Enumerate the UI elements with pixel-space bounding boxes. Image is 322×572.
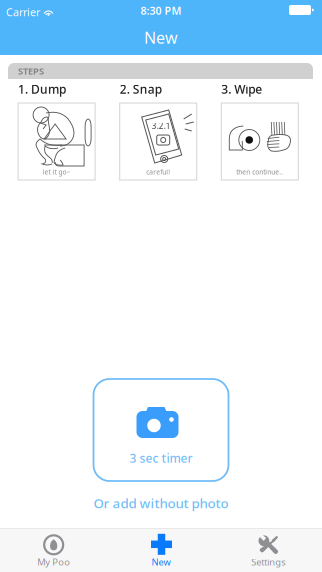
staticText: New [151, 556, 170, 568]
staticText: 8:30 PM [140, 3, 181, 18]
staticText: careful! [146, 168, 170, 176]
staticText: Or add without photo [93, 494, 228, 512]
staticText: 3 sec timer [129, 450, 192, 466]
staticText: 3. Wipe [221, 81, 262, 97]
staticText: 3.2.1 [152, 121, 171, 131]
button[interactable]: New [107, 528, 215, 572]
button[interactable]: 3 sec timer [93, 379, 228, 481]
staticText: 2. Snap [120, 81, 162, 97]
button[interactable]: Or add without photo [51, 493, 271, 513]
staticText: then continue.. [236, 168, 283, 176]
staticText: New [144, 27, 178, 48]
button[interactable]: My Poo [0, 528, 107, 572]
staticText: STEPS [18, 65, 44, 77]
staticText: let it go~ [43, 168, 71, 176]
staticText: Carrier [6, 5, 40, 19]
staticText: My Poo [37, 556, 70, 568]
button[interactable]: Settings [215, 528, 322, 572]
staticText: Settings [251, 556, 285, 568]
staticText: 1. Dump [18, 81, 66, 97]
